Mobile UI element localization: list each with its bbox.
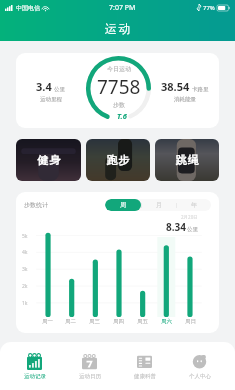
staticText: 步数统计 — [24, 201, 48, 209]
staticText: 运动里程 — [40, 96, 62, 103]
button[interactable]: 周 — [105, 199, 141, 211]
staticText: 中国电信 — [16, 4, 40, 12]
staticText: 运动记录 — [24, 373, 46, 380]
button[interactable]: 跑步 — [86, 139, 150, 181]
staticText: 7758 — [97, 74, 141, 100]
staticText: 消耗能量 — [174, 96, 196, 103]
staticText: 周日 — [185, 318, 196, 325]
staticText: 周 — [120, 201, 126, 209]
button[interactable]: 年 — [176, 199, 211, 211]
button[interactable]: 运动记录 — [7, 342, 62, 390]
staticText: T.6 — [117, 111, 127, 121]
staticText: 健康科普 — [134, 373, 156, 380]
button[interactable]: 健康科普 — [117, 342, 172, 390]
staticText: 3k — [22, 266, 28, 273]
staticText: 步数 — [113, 101, 125, 109]
button[interactable]: 月 — [141, 199, 176, 211]
staticText: 周三 — [89, 318, 100, 325]
staticText: 2k — [22, 283, 28, 290]
staticText: 个人中心 — [189, 373, 211, 380]
staticText: 跳绳 — [175, 153, 199, 167]
staticText: 运动 — [104, 21, 131, 36]
staticText: 1k — [22, 300, 28, 307]
button[interactable]: 健身 — [16, 139, 81, 181]
staticText: 公里 — [187, 226, 198, 233]
button[interactable]: 运动日历 — [62, 342, 117, 390]
staticText: 3.4 — [36, 79, 52, 94]
staticText: 今日运动 — [107, 65, 131, 73]
staticText: 8.34 — [166, 220, 186, 234]
staticText: 卡路里 — [192, 86, 209, 93]
staticText: 77% — [203, 4, 215, 12]
staticText: 5k — [22, 233, 28, 240]
staticText: 周四 — [113, 318, 124, 325]
staticText: 2月20日 — [181, 214, 198, 220]
staticText: 38.54 — [161, 79, 190, 94]
button[interactable]: 个人中心 — [172, 342, 227, 390]
staticText: 4k — [22, 249, 28, 256]
button[interactable]: 跳绳 — [155, 139, 219, 181]
staticText: 健身 — [37, 153, 61, 167]
staticText: 运动日历 — [79, 373, 101, 380]
staticText: 年 — [191, 201, 197, 209]
staticText: 月 — [156, 201, 162, 209]
staticText: 7:07 PM — [109, 3, 136, 13]
staticText: 周二 — [65, 318, 76, 325]
staticText: 周一 — [42, 318, 53, 325]
staticText: 周六 — [161, 318, 172, 325]
staticText: 公里 — [54, 86, 65, 93]
staticText: 跑步 — [106, 153, 130, 167]
staticText: 周五 — [137, 318, 148, 325]
